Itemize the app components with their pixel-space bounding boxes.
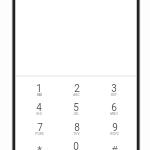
button[interactable]: Dial 8 — [59, 122, 93, 140]
staticText: 1 — [36, 83, 42, 95]
staticText: JKL — [73, 112, 79, 116]
staticText: 8 — [74, 122, 80, 134]
staticText: TUV — [73, 132, 80, 136]
button[interactable]: Dial 1 — [22, 83, 56, 101]
staticText: 0 — [73, 141, 79, 150]
staticText: GHI — [36, 112, 42, 116]
staticText: 6 — [111, 102, 117, 114]
staticText: 2 — [74, 83, 80, 95]
button[interactable]: Dial 4 — [22, 102, 56, 120]
staticText: * — [37, 144, 42, 150]
staticText: # — [111, 144, 118, 150]
staticText: ABC — [73, 93, 80, 97]
staticText: 3 — [111, 83, 117, 95]
staticText: 7 — [37, 122, 43, 134]
button[interactable]: Dial 6 — [97, 102, 131, 120]
button[interactable]: Dial 7 — [22, 122, 56, 140]
staticText: WXYZ — [110, 132, 119, 136]
button[interactable]: Dial * — [22, 144, 56, 150]
button[interactable]: Dial 3 — [97, 83, 131, 101]
button[interactable]: Dial # — [97, 144, 131, 150]
button[interactable]: Dial 5 — [59, 102, 93, 120]
button[interactable]: Dial 0 — [59, 141, 93, 150]
staticText: MNO — [110, 112, 118, 116]
staticText: 9 — [112, 122, 118, 134]
staticText: DEF — [111, 93, 117, 97]
staticText: PQRS — [35, 132, 44, 136]
staticText: 5 — [73, 102, 79, 114]
button[interactable]: Dial 2 — [59, 83, 93, 101]
button[interactable]: Dial 9 — [97, 122, 131, 140]
staticText: 4 — [36, 102, 42, 114]
